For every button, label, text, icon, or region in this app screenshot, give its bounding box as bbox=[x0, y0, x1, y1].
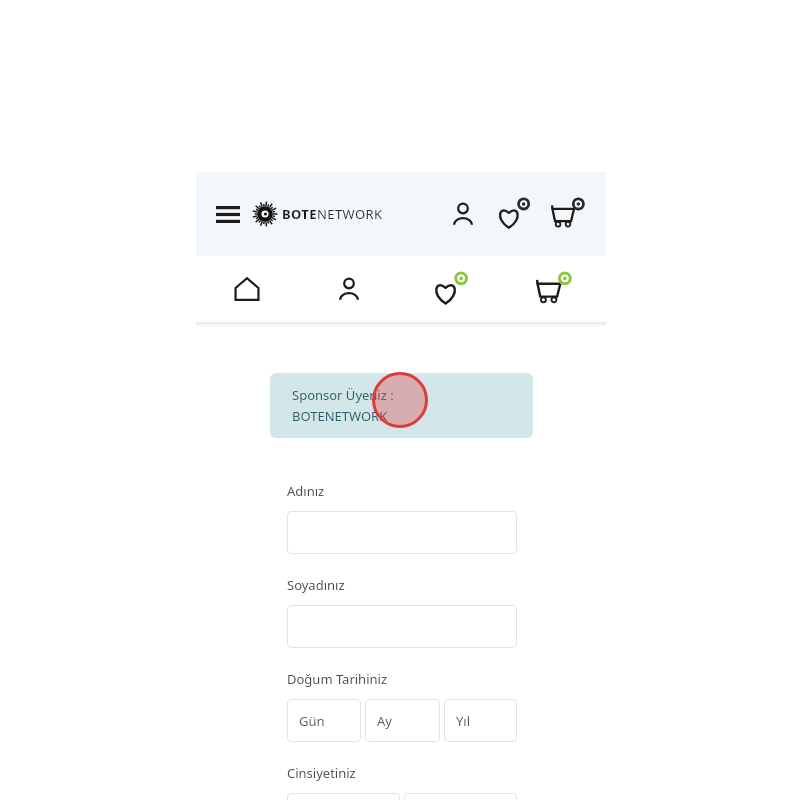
button[interactable]: Favorites bbox=[496, 195, 534, 233]
button[interactable]: Cart bbox=[503, 256, 606, 322]
staticText: Soyadınız bbox=[287, 576, 345, 594]
staticText: BOTENETWORK bbox=[292, 407, 388, 425]
button[interactable]: Ay bbox=[365, 699, 440, 742]
button[interactable] bbox=[404, 793, 517, 800]
button[interactable]: Home bbox=[196, 256, 298, 322]
button[interactable]: Yıl bbox=[444, 699, 517, 742]
staticText: NETWORK bbox=[317, 205, 383, 223]
staticText: BOTE bbox=[282, 205, 317, 223]
button[interactable]: Gün bbox=[287, 699, 361, 742]
button[interactable]: Account bbox=[298, 256, 400, 322]
button[interactable] bbox=[287, 605, 517, 648]
button[interactable]: Favorites bbox=[400, 256, 503, 322]
staticText: Adınız bbox=[287, 482, 325, 500]
staticText: Doğum Tarihiniz bbox=[287, 670, 388, 688]
button[interactable]: Cart bbox=[550, 195, 588, 233]
button[interactable]: Account bbox=[446, 197, 480, 231]
button[interactable]: Sponsor Üyeniz : bbox=[270, 373, 533, 438]
staticText: Ay bbox=[377, 712, 392, 730]
button[interactable]: BOTE bbox=[252, 201, 383, 227]
button[interactable] bbox=[287, 511, 517, 554]
staticText: Cinsiyetiniz bbox=[287, 764, 356, 782]
button[interactable]: Menu bbox=[208, 194, 248, 234]
staticText: Yıl bbox=[456, 712, 471, 730]
staticText: Sponsor Üyeniz : bbox=[292, 386, 394, 404]
staticText: Gün bbox=[299, 712, 325, 730]
button[interactable] bbox=[287, 793, 400, 800]
